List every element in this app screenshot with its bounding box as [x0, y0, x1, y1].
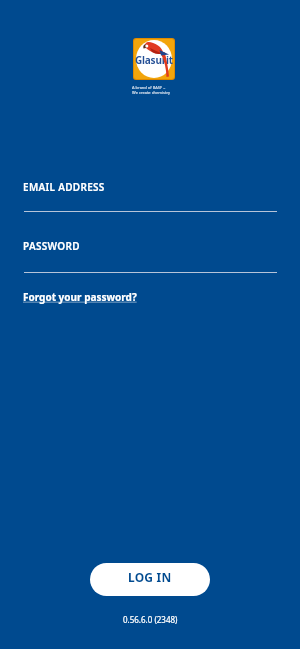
button[interactable]: LOG IN [90, 563, 210, 596]
staticText: PASSWORD [23, 239, 80, 253]
staticText: A brand of BASF – [132, 85, 166, 90]
button[interactable]: Forgot your password? [23, 290, 137, 304]
staticText: EMAIL ADDRESS [23, 180, 105, 194]
staticText: 0.56.6.0 (2348) [123, 614, 178, 625]
staticText: Glasurit [135, 53, 173, 67]
staticText: LOG IN [128, 569, 172, 585]
staticText: Forgot your password? [23, 290, 137, 304]
staticText: We create chemistry [132, 90, 171, 95]
